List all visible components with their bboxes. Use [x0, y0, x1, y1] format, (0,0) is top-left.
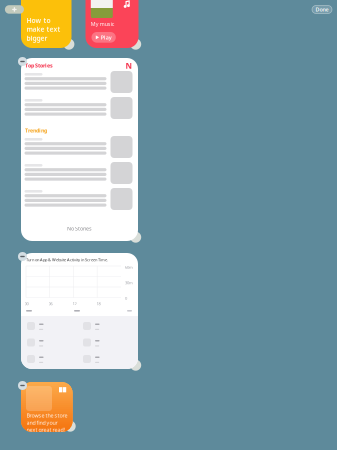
staticText: Browse the store and find your next grea… — [26, 412, 67, 433]
button[interactable]: My music — [85, 0, 138, 48]
staticText: 30m — [125, 280, 133, 285]
staticText: Done — [315, 6, 328, 13]
button[interactable]: Remove widget — [17, 56, 28, 67]
button[interactable]: How to make text bigger — [21, 0, 71, 48]
staticText: My music — [91, 20, 115, 28]
staticText: 06 — [48, 301, 52, 306]
button[interactable]: Add widget — [5, 5, 24, 14]
button[interactable]: Remove widget — [17, 251, 28, 262]
staticText: 00 — [24, 301, 28, 306]
button[interactable]: Browse the store and find your next grea… — [21, 382, 73, 432]
staticText: 60m — [125, 264, 133, 270]
staticText: 18 — [96, 301, 100, 306]
button[interactable]: Remove widget — [17, 380, 28, 391]
staticText: Top Stories — [25, 62, 53, 69]
button[interactable]: Done — [312, 5, 332, 13]
staticText: No Stories — [67, 225, 92, 232]
staticText: N — [125, 60, 132, 71]
staticText: Turn on App & Website Activity in Screen… — [26, 257, 108, 262]
button[interactable]: Top Stories — [21, 58, 138, 241]
button[interactable]: Turn on App & Website Activity in Screen… — [21, 253, 138, 369]
staticText: 0 — [125, 295, 127, 301]
staticText: 12 — [72, 301, 76, 306]
staticText: How to make text bigger — [26, 16, 60, 43]
staticText: Trending — [25, 127, 47, 134]
staticText: Play — [101, 34, 112, 41]
